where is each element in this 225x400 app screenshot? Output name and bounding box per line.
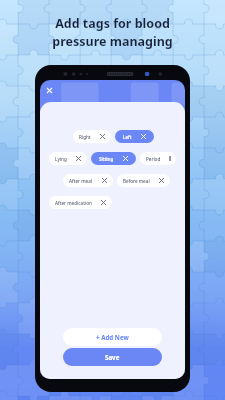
button[interactable]: Lying [49, 152, 87, 165]
staticText: Period [146, 156, 161, 162]
staticText: + Add New [96, 333, 129, 341]
button[interactable]: Before meal [117, 174, 170, 187]
button[interactable]: + Add New [63, 328, 162, 346]
staticText: Left [123, 134, 132, 140]
staticText: Sitting [99, 156, 114, 162]
button[interactable]: Period [140, 152, 176, 165]
button[interactable]: Save [63, 348, 162, 366]
button[interactable]: After medication [49, 196, 112, 209]
staticText: Right [79, 134, 91, 140]
button[interactable]: Left [115, 130, 154, 143]
staticText: Save [105, 353, 120, 361]
button[interactable]: Right [73, 130, 111, 143]
button[interactable]: After meal [63, 174, 113, 187]
staticText: Before meal [123, 178, 150, 184]
staticText: After medication [55, 200, 92, 206]
staticText: After meal [69, 178, 93, 184]
button[interactable]: Sitting [91, 152, 136, 165]
staticText: Add tags for blood pressure managing [0, 15, 225, 49]
staticText: Lying [55, 156, 67, 162]
button[interactable]: Close [43, 84, 56, 97]
